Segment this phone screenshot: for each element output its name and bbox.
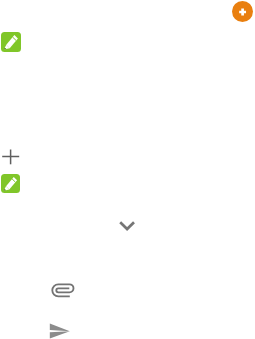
button[interactable]: Add <box>1 148 21 166</box>
button[interactable]: Edit <box>1 32 21 52</box>
button[interactable]: Attach <box>49 280 77 300</box>
button[interactable]: Send <box>49 323 70 339</box>
button[interactable]: Edit <box>1 174 20 193</box>
button[interactable]: Expand <box>116 216 138 234</box>
button[interactable]: Add <box>232 1 253 22</box>
